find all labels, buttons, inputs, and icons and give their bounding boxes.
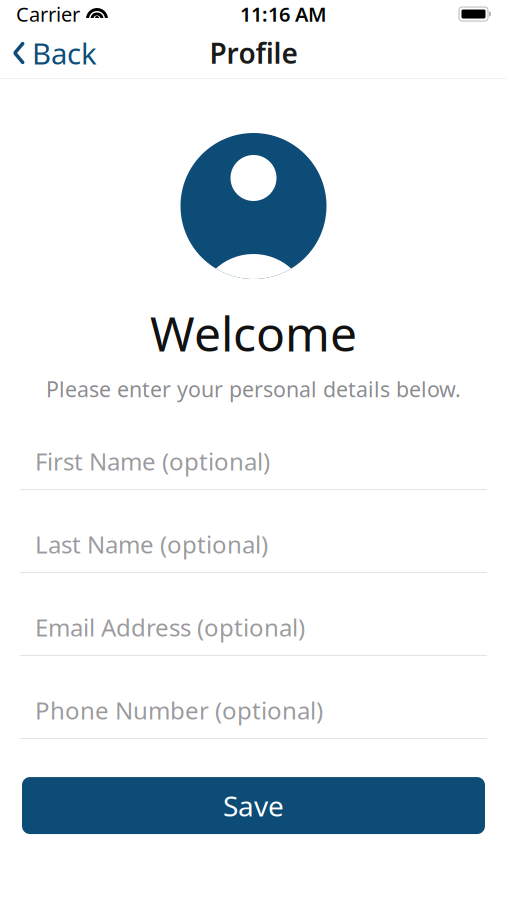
staticText: Save — [223, 787, 284, 824]
button[interactable]: Last Name (optional) — [0, 516, 507, 573]
button[interactable]: Back — [0, 31, 109, 75]
staticText: Phone Number (optional) — [35, 694, 323, 726]
button[interactable]: First Name (optional) — [0, 433, 507, 490]
staticText: 11:16 AM — [240, 1, 327, 27]
staticText: Carrier — [16, 1, 80, 27]
staticText: Please enter your personal details below… — [46, 375, 461, 403]
staticText: Welcome — [150, 301, 357, 365]
staticText: Email Address (optional) — [35, 611, 305, 643]
staticText: Profile — [209, 34, 297, 72]
button[interactable]: Email Address (optional) — [0, 599, 507, 656]
button[interactable]: Phone Number (optional) — [0, 682, 507, 739]
staticText: Last Name (optional) — [35, 528, 268, 560]
staticText: Back — [32, 33, 97, 72]
staticText: First Name (optional) — [35, 445, 270, 477]
button[interactable]: Save — [22, 777, 485, 834]
